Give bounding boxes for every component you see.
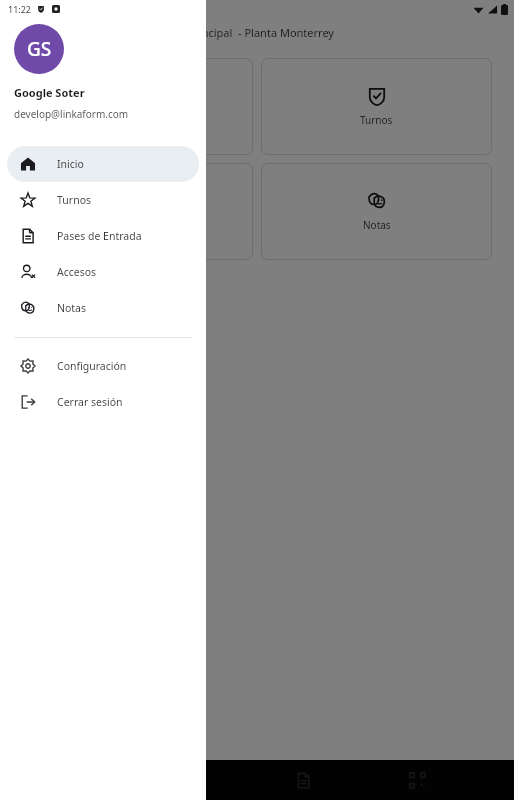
staticText: Accesos [57, 265, 97, 279]
button[interactable]: Notas [261, 163, 492, 260]
button[interactable]: Cerrar sesión [7, 384, 199, 420]
button[interactable]: Turnos [261, 58, 492, 155]
button[interactable]: Documentos [286, 763, 320, 797]
staticText: GS [27, 36, 52, 62]
button[interactable]: GS [14, 24, 64, 74]
staticText: Cerrar sesión [57, 395, 123, 409]
staticText: Pases de Entrada [57, 229, 142, 243]
staticText: Configuración [57, 359, 127, 373]
button[interactable]: Accesos [22, 58, 253, 155]
button[interactable]: Inicio [7, 146, 199, 182]
staticText: Caseta Principal - Planta Monterrey [150, 25, 334, 40]
staticText: 11:22 [8, 3, 32, 15]
button[interactable]: Escanear QR [400, 763, 434, 797]
button[interactable]: Pases de Entrada [7, 218, 199, 254]
button[interactable]: Turnos [7, 182, 199, 218]
button[interactable]: Configuración [7, 348, 199, 384]
button[interactable]: Notas [7, 290, 199, 326]
staticText: Turnos [57, 193, 92, 207]
button[interactable]: Accesos [7, 254, 199, 290]
staticText: Inicio [57, 157, 84, 171]
staticText: develop@linkaform.com [14, 107, 129, 121]
staticText: Accesos [119, 113, 157, 127]
staticText: Notas [363, 218, 391, 232]
staticText: Google Soter [14, 85, 85, 100]
button[interactable]: Pases [22, 163, 253, 260]
staticText: Notas [57, 301, 87, 315]
staticText: Turnos [360, 113, 393, 127]
